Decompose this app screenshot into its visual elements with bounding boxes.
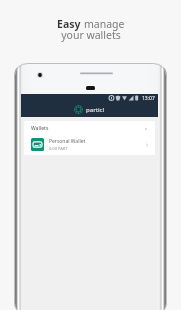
staticText: Wallets (31, 125, 49, 132)
button[interactable]: Wallets (24, 121, 155, 136)
staticText: manage (84, 17, 125, 31)
staticText: your wallets (61, 28, 121, 42)
staticText: Easy (57, 17, 84, 31)
other: More options (144, 127, 148, 131)
button[interactable]: Personal Wallet (24, 136, 155, 153)
staticText: Personal Wallet (49, 138, 86, 145)
staticText: particl (86, 106, 105, 114)
staticText: 13:07 (142, 95, 155, 102)
staticText: 0.00 PART (49, 146, 68, 151)
